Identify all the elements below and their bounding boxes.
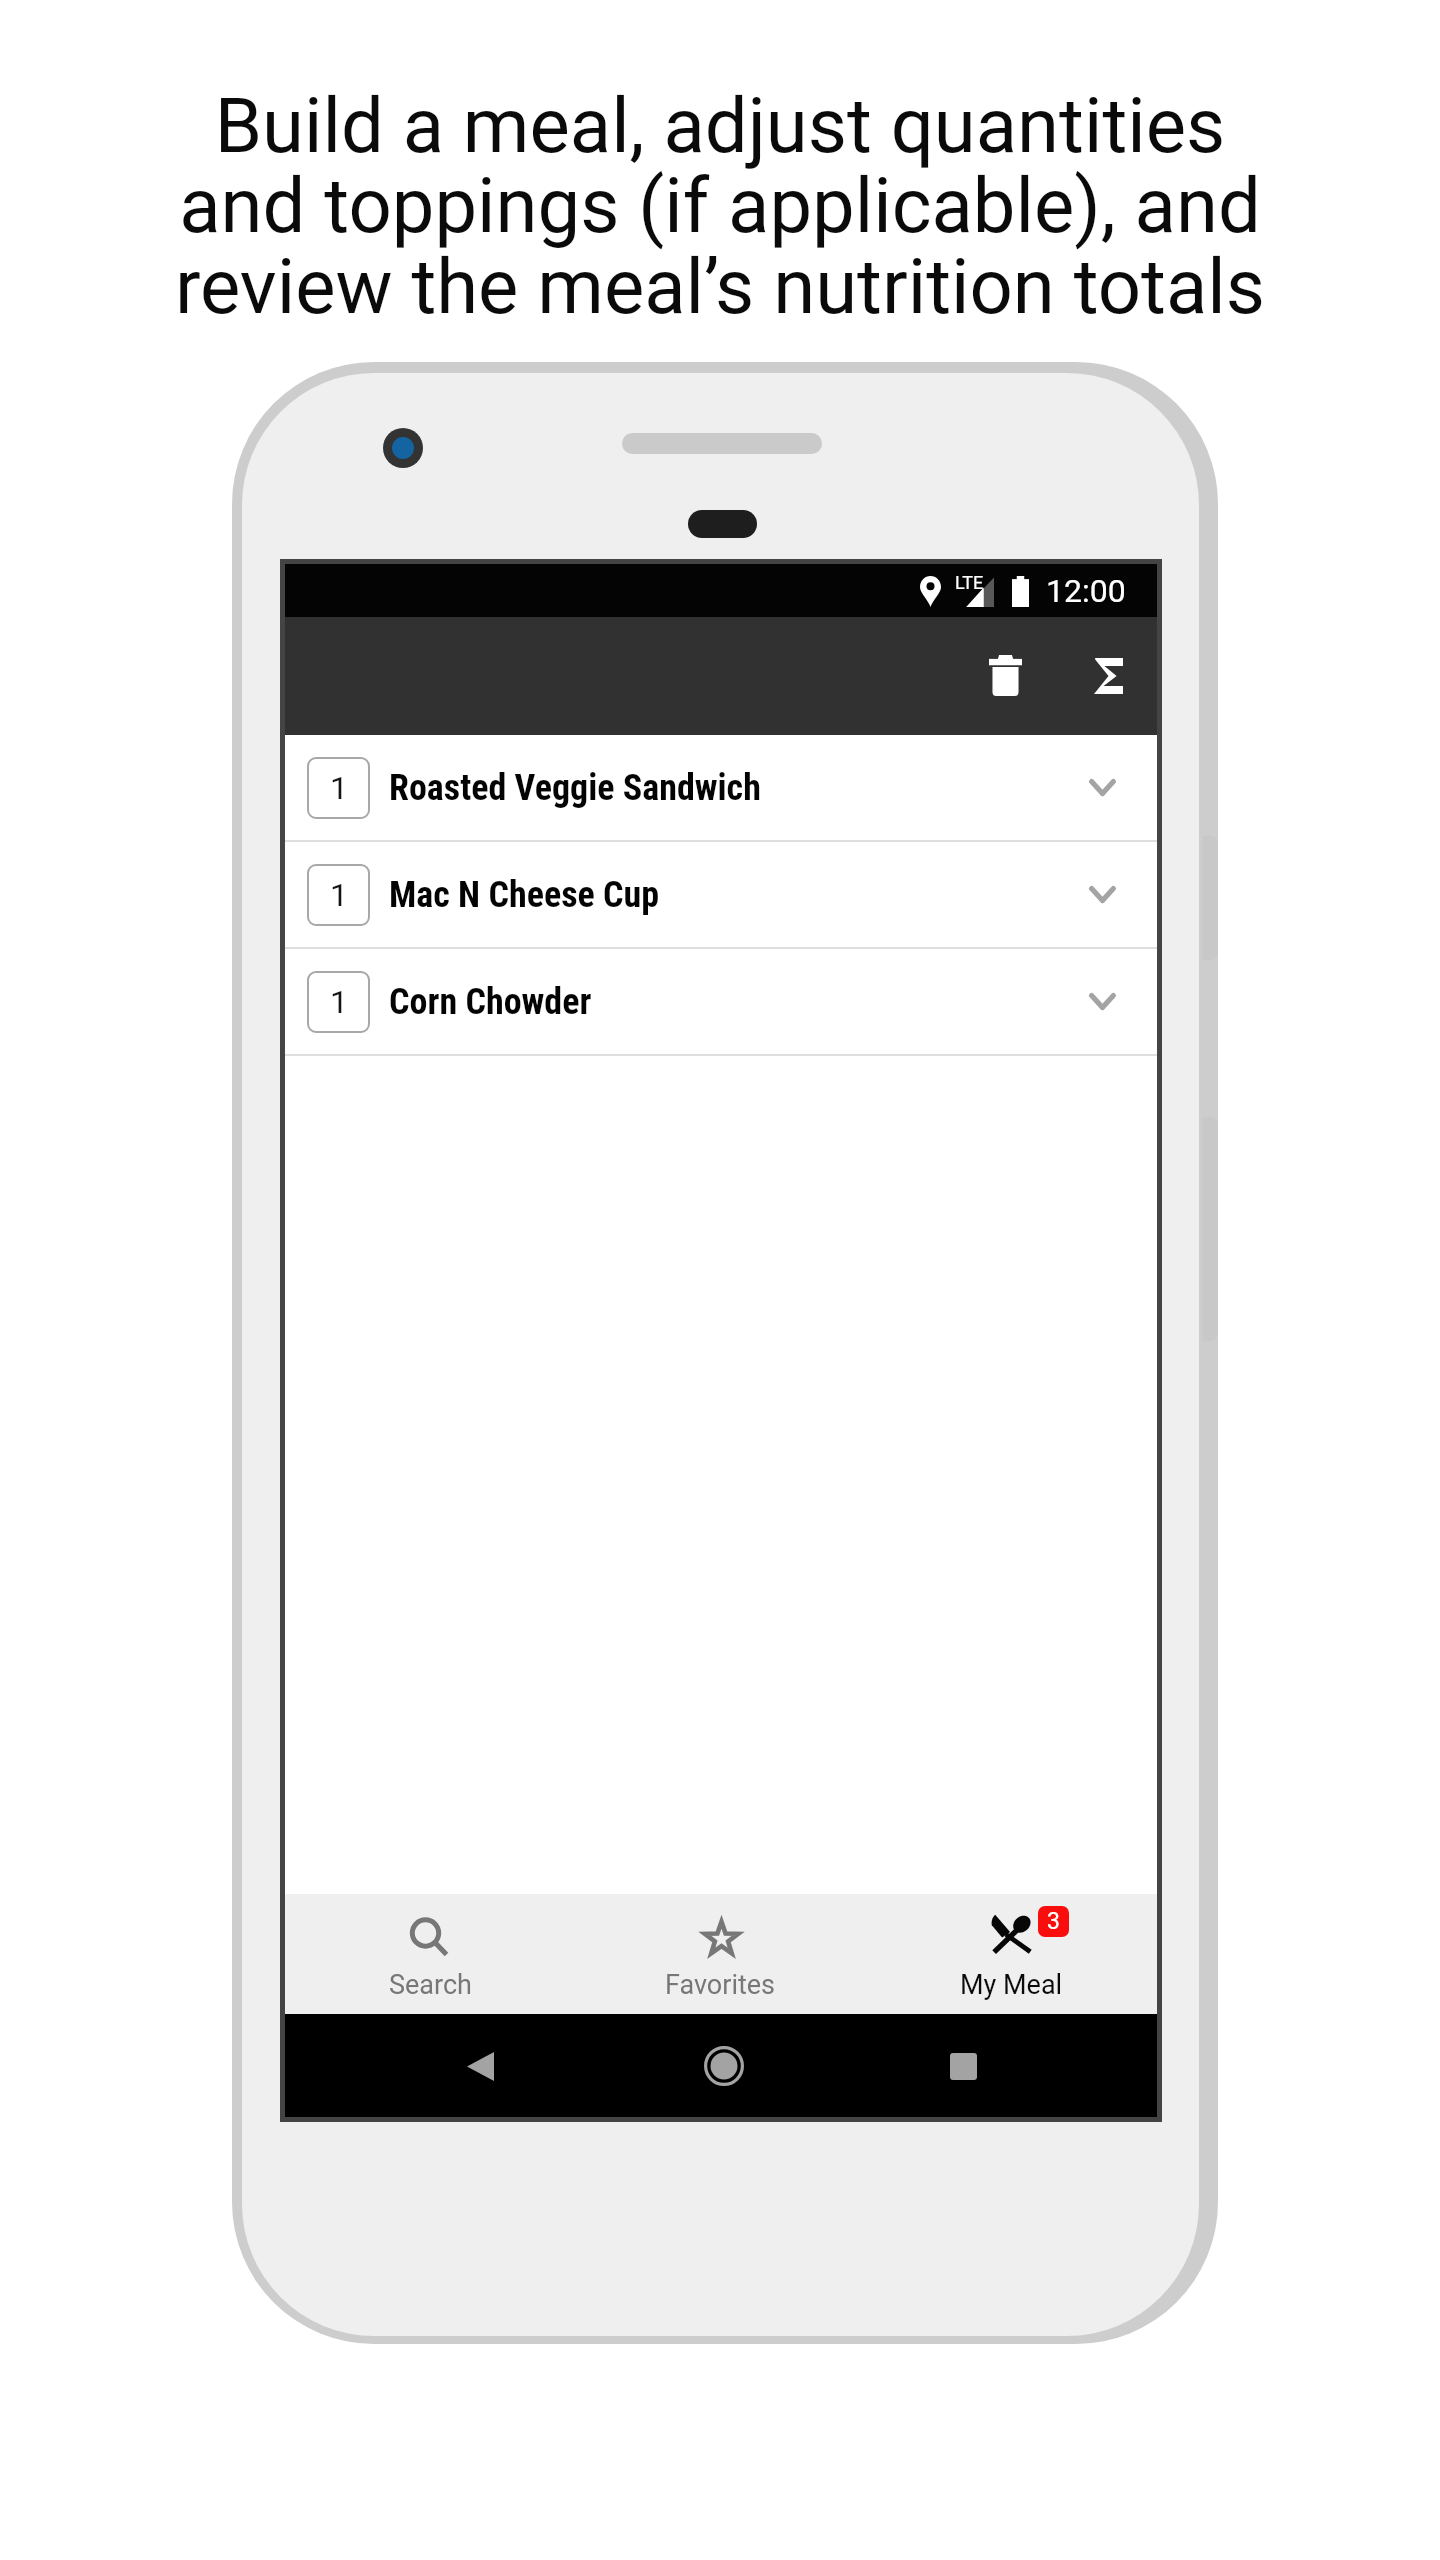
staticText: 3	[1047, 1908, 1060, 1935]
button[interactable]: 1	[285, 735, 1157, 842]
button[interactable]: 1	[285, 842, 1157, 949]
button[interactable]: Back	[440, 2026, 521, 2107]
staticText: 1	[330, 876, 348, 914]
staticText: Mac N Cheese Cup	[389, 874, 660, 916]
button[interactable]: Favorites	[575, 1894, 866, 2014]
staticText: Build a meal, adjust quantities and topp…	[170, 81, 1270, 332]
button[interactable]: 1	[285, 949, 1157, 1056]
staticText: Roasted Veggie Sandwich	[389, 767, 761, 809]
button[interactable]: Delete meal	[957, 627, 1054, 724]
button[interactable]: 3	[866, 1894, 1157, 2014]
staticText: Search	[389, 1969, 472, 2001]
button[interactable]: Search	[285, 1894, 575, 2014]
staticText: My Meal	[960, 1969, 1063, 2001]
button[interactable]: Recents	[923, 2026, 1004, 2107]
staticText: Corn Chowder	[389, 981, 592, 1023]
staticText: 1	[330, 983, 348, 1021]
staticText: 12:00	[1046, 572, 1126, 610]
staticText: 1	[330, 769, 348, 807]
button[interactable]: Nutrition totals	[1060, 627, 1157, 724]
staticText: LTE	[955, 572, 984, 593]
button[interactable]: Home	[683, 2025, 764, 2106]
staticText: Favorites	[665, 1969, 776, 2001]
